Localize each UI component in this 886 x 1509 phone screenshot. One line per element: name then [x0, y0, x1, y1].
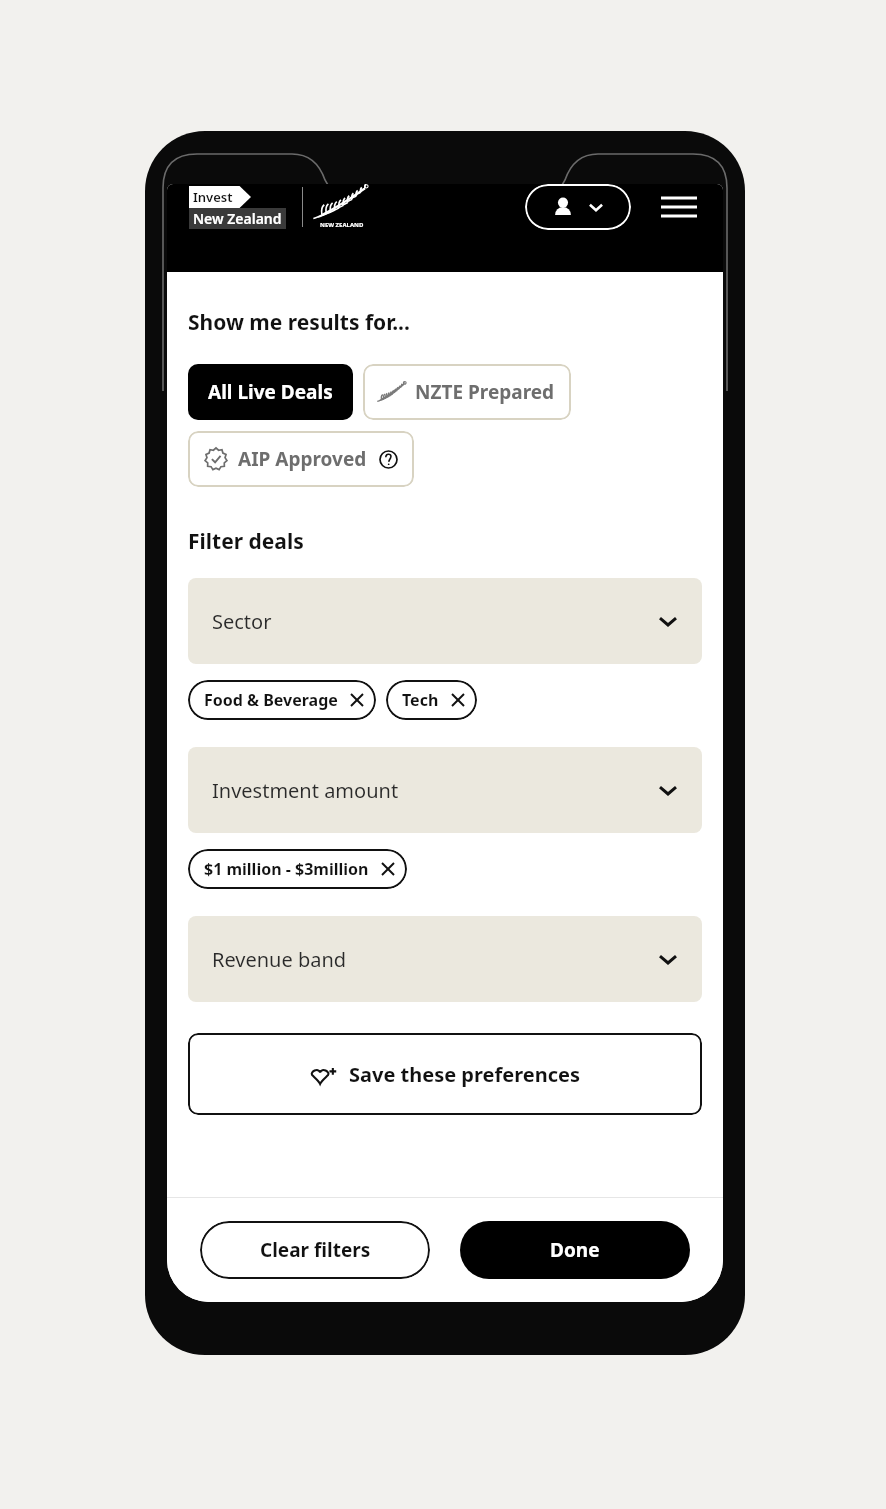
- staticText: All Live Deals: [208, 379, 333, 405]
- button[interactable]: Tech: [386, 680, 477, 720]
- button[interactable]: $1 million - $3million: [188, 849, 407, 889]
- button[interactable]: Food & Beverage: [188, 680, 376, 720]
- button[interactable]: Revenue band: [188, 916, 702, 1002]
- button[interactable]: NZTE Prepared: [363, 364, 571, 420]
- staticText: Done: [550, 1237, 600, 1263]
- button[interactable]: Save these preferences: [188, 1033, 702, 1115]
- staticText: Show me results for...: [188, 308, 410, 337]
- button[interactable]: Investment amount: [188, 747, 702, 833]
- staticText: Filter deals: [188, 527, 304, 556]
- button[interactable]: All Live Deals: [188, 364, 353, 420]
- staticText: Save these preferences: [349, 1061, 580, 1088]
- staticText: NZTE Prepared: [415, 379, 555, 405]
- staticText: $1 million - $3million: [204, 858, 369, 880]
- staticText: New Zealand: [193, 209, 282, 228]
- staticText: AIP Approved: [238, 446, 367, 472]
- staticText: Investment amount: [212, 777, 399, 804]
- staticText: Sector: [212, 608, 272, 635]
- button[interactable]: AIP Approved: [188, 431, 414, 487]
- button[interactable]: Clear filters: [200, 1221, 430, 1279]
- button[interactable]: Done: [460, 1221, 690, 1279]
- button[interactable]: Menu: [657, 185, 701, 229]
- staticText: Clear filters: [260, 1237, 371, 1263]
- button[interactable]: Sector: [188, 578, 702, 664]
- staticText: Revenue band: [212, 946, 347, 973]
- staticText: Tech: [402, 689, 439, 711]
- staticText: Food & Beverage: [204, 689, 338, 711]
- staticText: NEW ZEALAND: [320, 221, 364, 229]
- button[interactable]: Account menu: [525, 184, 631, 230]
- staticText: Invest: [193, 188, 233, 206]
